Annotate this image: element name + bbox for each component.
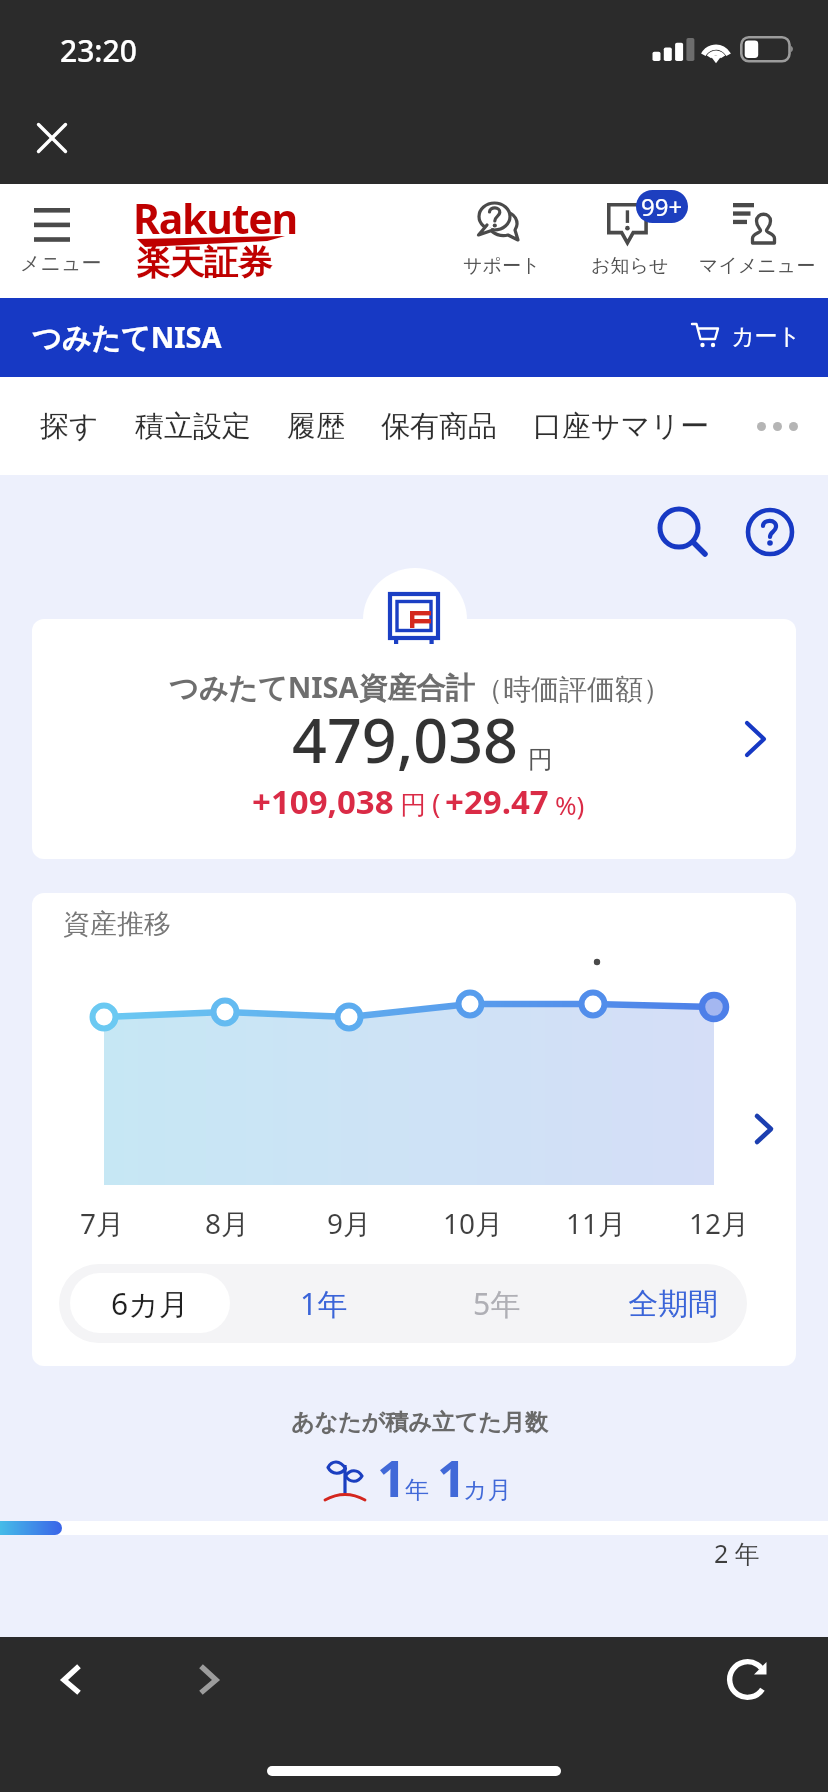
- staticText: 23:20: [60, 30, 137, 71]
- staticText: 12月: [689, 1204, 750, 1242]
- staticText: 口座サマリー: [533, 408, 710, 445]
- button[interactable]: 口座サマリー: [515, 398, 728, 455]
- staticText: 全期間: [628, 1285, 718, 1323]
- button[interactable]: ヘルプ: [736, 498, 804, 566]
- button[interactable]: 進む: [180, 1645, 240, 1705]
- staticText: Rakuten: [133, 190, 298, 246]
- button[interactable]: 探す: [22, 398, 117, 455]
- staticText: %): [555, 787, 585, 822]
- staticText: サポート: [463, 254, 541, 278]
- staticText: カート: [731, 322, 802, 351]
- staticText: お知らせ: [591, 254, 669, 278]
- button[interactable]: カート: [680, 308, 804, 366]
- staticText: (: [432, 784, 441, 822]
- button[interactable]: 積立設定: [117, 398, 269, 455]
- staticText: 年: [405, 1475, 429, 1505]
- staticText: +109,038: [252, 779, 394, 824]
- staticText: 8月: [205, 1204, 250, 1242]
- staticText: 円: [400, 789, 426, 822]
- button[interactable]: メニュー: [6, 190, 106, 290]
- button[interactable]: 閉じる: [22, 108, 82, 168]
- staticText: つみたてNISA: [32, 317, 222, 357]
- button[interactable]: 6カ月: [70, 1273, 230, 1333]
- staticText: 9月: [327, 1204, 372, 1242]
- button[interactable]: 再読み込み: [718, 1651, 778, 1711]
- button[interactable]: 次へ: [743, 1102, 789, 1148]
- staticText: マイメニュー: [699, 254, 816, 278]
- staticText: 99+: [641, 190, 683, 223]
- button[interactable]: お知らせ: [578, 188, 688, 290]
- staticText: 5年: [473, 1283, 521, 1324]
- button[interactable]: 5年: [422, 1264, 572, 1343]
- staticText: +29.47: [445, 779, 549, 824]
- staticText: 積立設定: [135, 408, 251, 445]
- staticText: あなたが積み立てた月数: [291, 1408, 548, 1437]
- button[interactable]: その他: [749, 414, 806, 439]
- button[interactable]: 保有商品: [363, 398, 515, 455]
- staticText: 探す: [40, 408, 99, 445]
- staticText: （時価評価額）: [475, 672, 671, 707]
- staticText: 11月: [566, 1204, 627, 1242]
- staticText: 保有商品: [381, 408, 497, 445]
- staticText: 円: [528, 744, 553, 775]
- button[interactable]: 戻る: [40, 1645, 100, 1705]
- staticText: 1: [437, 1442, 467, 1511]
- staticText: つみたてNISA資産合計: [169, 667, 475, 707]
- staticText: メニュー: [20, 251, 102, 276]
- staticText: 1年: [300, 1283, 348, 1324]
- staticText: カ月: [463, 1475, 512, 1505]
- button[interactable]: マイメニュー: [690, 188, 828, 290]
- button[interactable]: 検索: [648, 498, 716, 566]
- staticText: 10月: [443, 1204, 504, 1242]
- staticText: 2 年: [714, 1536, 760, 1570]
- staticText: 資産推移: [63, 907, 171, 941]
- button[interactable]: 全期間: [588, 1264, 747, 1343]
- button[interactable]: Rakuten: [130, 190, 330, 290]
- button[interactable]: 1年: [249, 1264, 399, 1343]
- staticText: 7月: [80, 1204, 125, 1242]
- button[interactable]: つみたてNISA資産合計: [32, 619, 796, 859]
- staticText: 楽天証券: [136, 241, 272, 284]
- staticText: 6カ月: [111, 1283, 189, 1324]
- button[interactable]: サポート: [450, 188, 546, 290]
- button[interactable]: 履歴: [269, 398, 363, 455]
- staticText: 1: [377, 1442, 407, 1511]
- staticText: 履歴: [287, 408, 345, 445]
- staticText: 479,038: [292, 698, 519, 781]
